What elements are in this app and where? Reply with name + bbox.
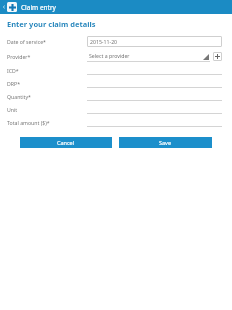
button[interactable]: Save — [119, 137, 212, 148]
staticText: ICD* — [7, 67, 19, 74]
staticText: Cancel — [57, 139, 75, 146]
button[interactable]: 2015-11-20 — [87, 36, 222, 47]
staticText: Enter your claim details — [7, 19, 96, 29]
staticText: Unit — [7, 106, 18, 113]
button[interactable] — [87, 92, 222, 101]
staticText: Quantity* — [7, 93, 31, 100]
staticText: Save — [159, 139, 172, 146]
button[interactable] — [87, 66, 222, 75]
staticText: Date of service* — [7, 38, 46, 45]
button[interactable] — [87, 118, 222, 127]
button[interactable]: Add provider — [213, 52, 222, 61]
staticText: DRP* — [7, 80, 21, 87]
staticText: Provider* — [7, 53, 31, 60]
staticText: 2015-11-20 — [90, 38, 118, 45]
staticText: Select a provider — [89, 52, 130, 59]
button[interactable]: Select a provider — [87, 51, 210, 62]
button[interactable] — [87, 79, 222, 88]
staticText: Total amount ($)* — [7, 119, 50, 126]
button[interactable] — [87, 105, 222, 114]
button[interactable]: Back — [0, 0, 7, 14]
button[interactable]: Cancel — [20, 137, 112, 148]
staticText: Claim entry — [21, 3, 56, 12]
